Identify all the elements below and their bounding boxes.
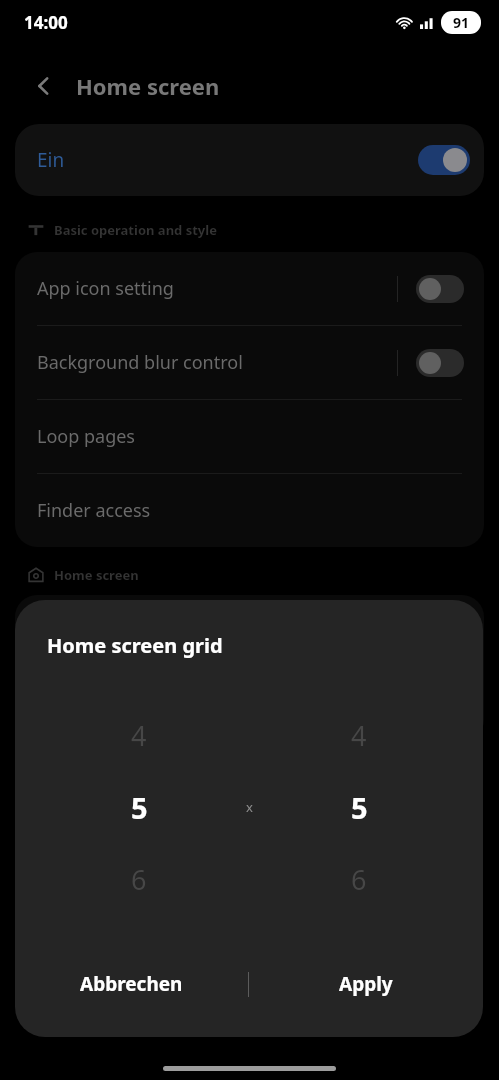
staticText: 4	[131, 717, 147, 754]
staticText: Background blur control	[37, 350, 243, 375]
button[interactable]: App icon setting	[15, 252, 484, 325]
button[interactable]: 5	[49, 771, 229, 843]
staticText: Home screen	[76, 71, 220, 101]
button[interactable]: App icon setting toggle	[416, 275, 464, 303]
staticText: 91	[453, 13, 470, 32]
button[interactable]: Background blur control toggle	[416, 349, 464, 377]
staticText: 5	[131, 788, 148, 827]
staticText: Home screen grid	[37, 619, 188, 644]
button[interactable]: Apply	[249, 945, 483, 1023]
button[interactable]: Back	[26, 68, 62, 104]
staticText: x	[246, 798, 253, 816]
button[interactable]: Ein	[15, 124, 484, 196]
button[interactable]: 5	[269, 771, 449, 843]
staticText: Basic operation and style	[54, 221, 217, 239]
staticText: Apply	[339, 971, 393, 997]
staticText: Home screen grid	[47, 632, 223, 659]
staticText: Abbrechen	[80, 971, 183, 997]
staticText: 14:00	[24, 11, 68, 34]
staticText: 6	[131, 861, 147, 898]
staticText: Loop pages	[37, 424, 135, 449]
staticText: 4	[351, 717, 367, 754]
staticText: Home screen	[54, 566, 139, 584]
button[interactable]: Background blur control	[15, 326, 484, 399]
button[interactable]: Abbrechen	[15, 945, 248, 1023]
staticText: Ein	[37, 147, 65, 173]
staticText: Finder access	[37, 498, 151, 523]
staticText: 5	[351, 788, 368, 827]
button[interactable]: Home screen grid	[15, 595, 484, 668]
button[interactable]: Finder access	[15, 474, 484, 547]
staticText: App icon setting	[37, 276, 174, 301]
button[interactable]: Loop pages	[15, 400, 484, 473]
button[interactable]: Home screen enabled	[418, 145, 470, 175]
staticText: 6	[351, 861, 367, 898]
